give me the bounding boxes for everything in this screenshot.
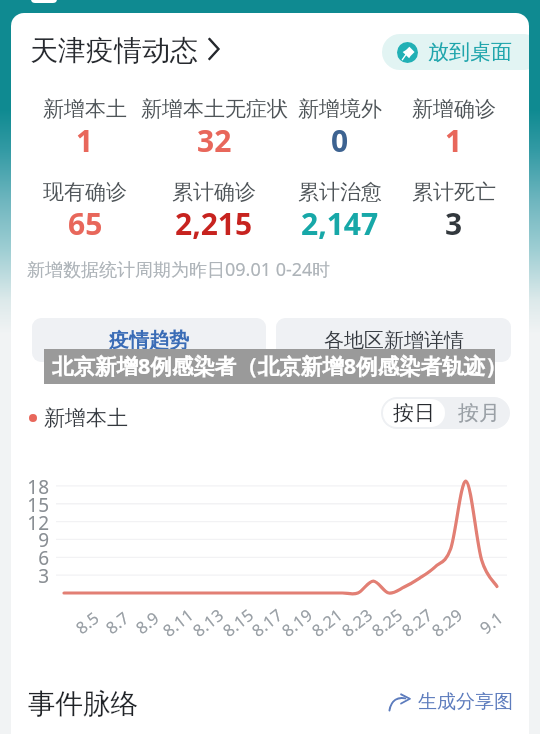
staticText: 12 — [19, 510, 49, 536]
staticText: 3 — [19, 563, 49, 589]
staticText: 8.17 — [247, 603, 286, 641]
staticText: 9 — [19, 527, 49, 553]
staticText: 新增数据统计周期为昨日09.01 0-24时 — [27, 257, 331, 282]
staticText: 65 — [68, 203, 103, 244]
staticText: 6 — [19, 545, 49, 571]
staticText: 8.9 — [131, 606, 163, 638]
staticText: 事件脉络 — [28, 687, 138, 722]
staticText: 15 — [19, 492, 49, 518]
staticText: 0 — [331, 120, 349, 161]
button[interactable]: 疫情趋势 — [32, 318, 266, 362]
staticText: 32 — [197, 120, 232, 161]
staticText: 8.11 — [158, 603, 197, 641]
button[interactable]: 天津疫情动态 — [30, 31, 198, 69]
staticText: 1 — [445, 120, 463, 161]
staticText: 累计确诊 — [172, 179, 256, 205]
staticText: 8.21 — [307, 603, 346, 641]
staticText: 北京新增8例感染者（北京新增8例感染者轨迹） — [52, 351, 503, 380]
staticText: 2,215 — [175, 203, 253, 244]
staticText: 新增确诊 — [412, 96, 496, 122]
staticText: 生成分享图 — [418, 690, 513, 714]
staticText: 累计治愈 — [298, 179, 382, 205]
button[interactable]: 按日 — [383, 399, 445, 427]
staticText: 新增本土无症状 — [141, 96, 288, 122]
button[interactable]: 生成分享图 — [389, 686, 513, 718]
staticText: 9.1 — [475, 606, 507, 638]
button[interactable]: Pin to home screen — [382, 34, 529, 70]
staticText: 8.25 — [367, 603, 406, 641]
staticText: 8.5 — [71, 606, 103, 638]
staticText: 新增本土 — [44, 405, 128, 431]
staticText: 各地区新增详情 — [324, 328, 464, 353]
staticText: 按日 — [393, 400, 435, 426]
staticText: 放到桌面 — [428, 39, 512, 65]
staticText: 18 — [19, 474, 49, 500]
staticText: 2,147 — [301, 203, 379, 244]
staticText: 新增本土 — [43, 96, 127, 122]
staticText: 8.19 — [277, 603, 316, 641]
other: Pin to home screen — [397, 42, 418, 63]
staticText: 8.23 — [337, 603, 376, 641]
staticText: 按月 — [458, 400, 500, 426]
staticText: 8.13 — [188, 603, 227, 641]
staticText: 新增境外 — [298, 96, 382, 122]
button[interactable]: 新增本土 — [29, 405, 128, 431]
staticText: 累计死亡 — [412, 179, 496, 205]
staticText: 天津疫情动态 — [30, 33, 198, 68]
staticText: 8.27 — [397, 603, 436, 641]
staticText: 3 — [445, 203, 463, 244]
staticText: 现有确诊 — [43, 179, 127, 205]
button[interactable]: 按月 — [447, 399, 510, 427]
staticText: 8.15 — [218, 603, 257, 641]
button[interactable]: 各地区新增详情 — [276, 318, 511, 362]
staticText: 1 — [76, 120, 94, 161]
staticText: 8.29 — [427, 603, 466, 641]
staticText: 8.7 — [101, 606, 133, 638]
staticText: 疫情趋势 — [109, 328, 189, 353]
